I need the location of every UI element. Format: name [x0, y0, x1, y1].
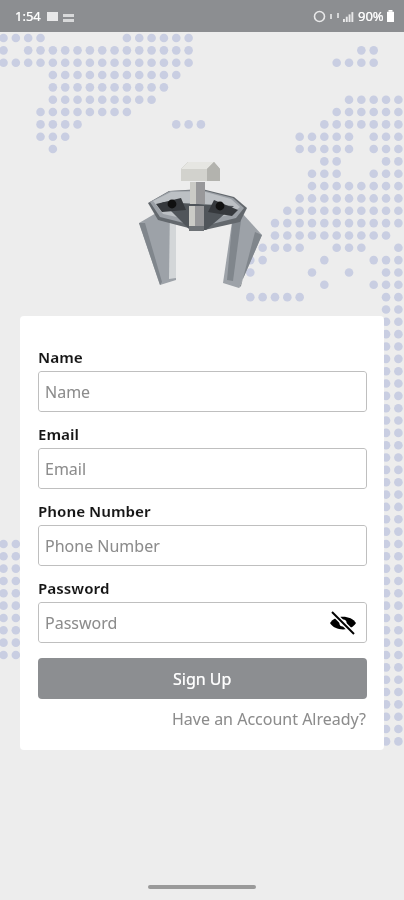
button[interactable]: Show password [329, 609, 357, 637]
staticText: Name [45, 381, 91, 403]
staticText: 1:54 [15, 7, 41, 25]
staticText: Sign Up [173, 668, 232, 690]
button[interactable]: Have an Account Already? [172, 708, 367, 730]
staticText: Email [38, 424, 79, 444]
staticText: Name [38, 347, 83, 367]
staticText: Email [45, 458, 87, 480]
button[interactable]: Phone Number [38, 525, 367, 566]
staticText: Phone Number [45, 535, 160, 557]
staticText: Password [45, 612, 118, 634]
staticText: 90% [358, 7, 384, 25]
staticText: Phone Number [38, 501, 151, 521]
button[interactable]: Email [38, 448, 367, 489]
button[interactable]: Password [38, 602, 367, 643]
button[interactable]: Name [38, 371, 367, 412]
staticText: Password [38, 578, 110, 598]
staticText: Have an Account Already? [172, 708, 367, 730]
button[interactable]: Sign Up [38, 658, 367, 699]
